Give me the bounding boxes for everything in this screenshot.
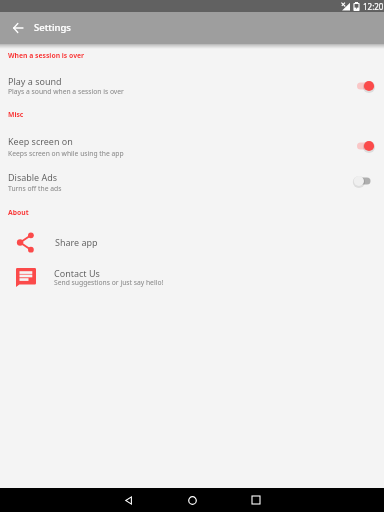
button[interactable]: Home bbox=[160, 488, 224, 512]
staticText: Send suggestions or just say hello! bbox=[54, 278, 164, 287]
button[interactable]: Toggle on bbox=[348, 134, 380, 158]
button[interactable]: Toggle off bbox=[348, 169, 380, 193]
button[interactable]: Share app bbox=[0, 228, 384, 264]
staticText: About bbox=[8, 208, 29, 217]
button[interactable]: Recent apps bbox=[224, 488, 288, 512]
staticText: Share app bbox=[55, 236, 98, 248]
staticText: Misc bbox=[8, 110, 24, 119]
staticText: Turns off the ads bbox=[8, 184, 62, 193]
staticText: Settings bbox=[34, 21, 71, 34]
staticText: Keeps screen on while using the app bbox=[8, 149, 124, 158]
staticText: Disable Ads bbox=[8, 171, 58, 183]
button[interactable]: Keep screen on bbox=[0, 127, 384, 163]
staticText: 12:20 bbox=[363, 1, 384, 12]
button[interactable]: Back bbox=[96, 488, 160, 512]
staticText: Keep screen on bbox=[8, 135, 73, 147]
staticText: When a session is over bbox=[8, 51, 85, 60]
staticText: Plays a sound when a session is over bbox=[8, 87, 124, 96]
staticText: Play a sound bbox=[8, 75, 62, 87]
button[interactable]: Contact Us bbox=[0, 264, 384, 300]
button[interactable]: Toggle on bbox=[348, 74, 380, 98]
button[interactable]: Play a sound bbox=[0, 67, 384, 103]
button[interactable]: Disable Ads bbox=[0, 163, 384, 199]
button[interactable]: Back bbox=[6, 16, 30, 40]
staticText: Contact Us bbox=[54, 267, 100, 279]
